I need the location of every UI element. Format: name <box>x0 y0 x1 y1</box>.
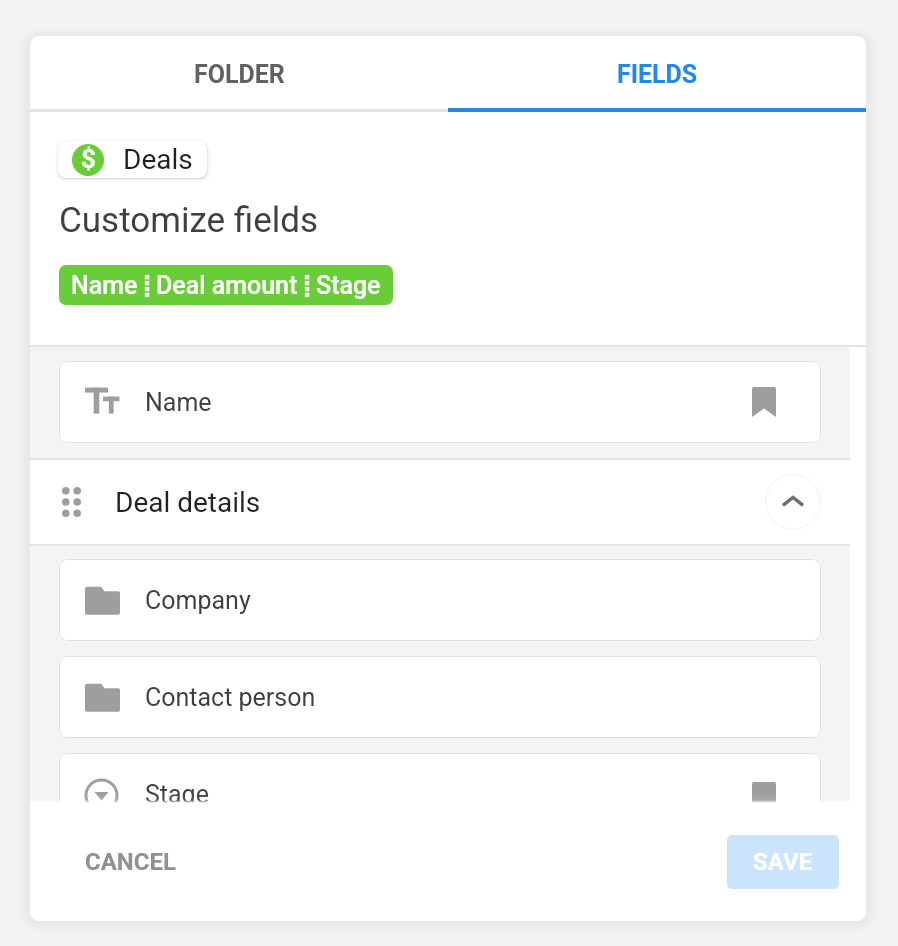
button[interactable]: $ <box>58 141 207 178</box>
button[interactable]: Primary field <box>740 378 788 426</box>
staticText: Deal details <box>115 486 261 519</box>
staticText: Deals <box>123 143 193 176</box>
button[interactable]: CANCEL <box>69 836 192 888</box>
button[interactable]: Collapse Deal details <box>765 474 821 530</box>
button[interactable]: FOLDER <box>30 36 448 112</box>
staticText: Stage <box>145 780 209 809</box>
staticText: Company <box>145 586 251 615</box>
staticText: Name <box>71 271 138 300</box>
staticText: CANCEL <box>85 848 176 876</box>
button[interactable]: Name <box>59 361 821 443</box>
button[interactable]: SAVE <box>727 835 839 889</box>
button[interactable]: Field options <box>740 770 788 818</box>
button[interactable]: Deal details <box>30 460 850 544</box>
staticText: FOLDER <box>194 60 285 89</box>
staticText: Stage <box>316 271 381 300</box>
staticText: Name <box>145 388 212 417</box>
staticText: Contact person <box>145 683 316 712</box>
button[interactable]: Contact person <box>59 656 821 738</box>
staticText: Deal amount <box>156 271 298 300</box>
staticText: FIELDS <box>617 60 698 89</box>
staticText: Customize fields <box>59 200 319 241</box>
staticText: $ <box>81 144 96 174</box>
button[interactable]: Stage <box>59 753 821 835</box>
staticText: SAVE <box>753 848 813 876</box>
button[interactable]: FIELDS <box>448 36 866 112</box>
button[interactable]: Company <box>59 559 821 641</box>
button[interactable]: Name <box>59 265 393 305</box>
